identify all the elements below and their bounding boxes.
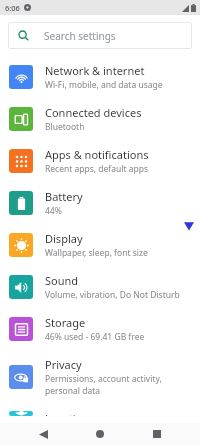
staticText: Connected devices xyxy=(45,105,142,120)
staticText: Sound xyxy=(45,273,79,288)
staticText: Privacy xyxy=(45,357,82,372)
staticText: Display xyxy=(45,231,83,246)
staticText: Bluetooth xyxy=(45,121,85,133)
button[interactable]: Connected devices xyxy=(0,98,200,140)
staticText: 46% used - 69.41 GB free xyxy=(45,331,145,343)
button[interactable]: Recent apps xyxy=(143,423,171,445)
staticText: 6:06 xyxy=(5,3,20,13)
staticText: Volume, vibration, Do Not Disturb xyxy=(45,289,180,301)
button[interactable]: Battery xyxy=(0,182,200,224)
button[interactable]: Apps & notifications xyxy=(0,140,200,182)
staticText: Wallpaper, sleep, font size xyxy=(45,247,148,259)
button[interactable]: Location xyxy=(0,404,200,423)
button[interactable]: Search settings xyxy=(8,22,192,49)
button[interactable]: Back xyxy=(29,423,57,445)
button[interactable]: Sound xyxy=(0,266,200,308)
staticText: 44% xyxy=(45,205,62,217)
staticText: Wi-Fi, mobile, and data usage xyxy=(45,79,163,91)
staticText: Recent apps, default apps xyxy=(45,163,149,175)
staticText: Search settings xyxy=(44,29,116,43)
staticText: Location xyxy=(45,411,90,416)
button[interactable]: Privacy xyxy=(0,350,200,404)
button[interactable]: Floating shortcut xyxy=(180,217,198,235)
button[interactable]: Display xyxy=(0,224,200,266)
button[interactable]: Home xyxy=(86,423,114,445)
staticText: Permissions, account activity, personal … xyxy=(45,373,190,397)
staticText: Storage xyxy=(45,315,86,330)
staticText: Network & internet xyxy=(45,63,145,78)
button[interactable]: Storage xyxy=(0,308,200,350)
staticText: Apps & notifications xyxy=(45,147,149,162)
button[interactable]: Network & internet xyxy=(0,56,200,98)
staticText: Battery xyxy=(45,189,83,204)
